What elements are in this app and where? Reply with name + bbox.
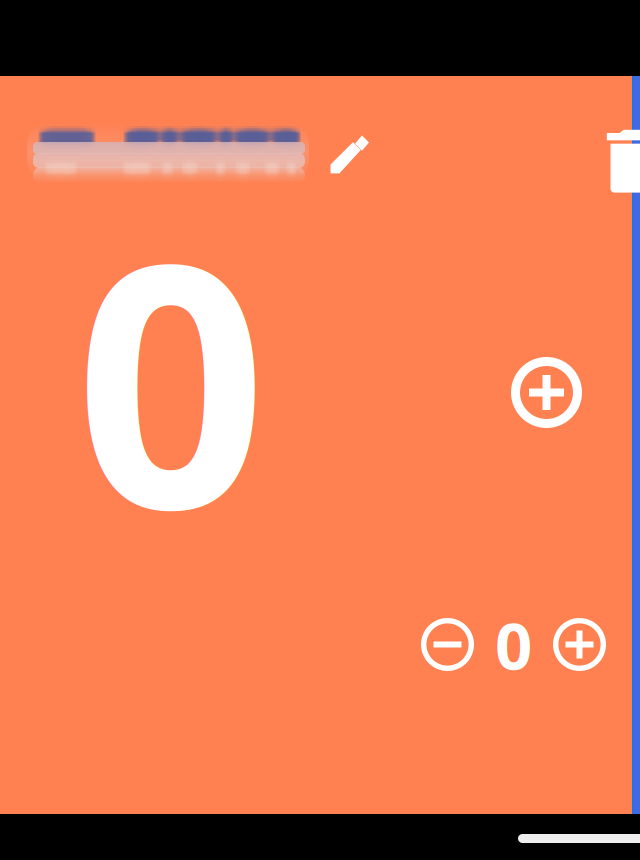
staticText: 0 <box>495 601 532 688</box>
staticText: 0 <box>75 155 267 601</box>
button[interactable]: Rename <box>330 135 369 174</box>
button[interactable]: Counter name <box>39 127 297 185</box>
button[interactable]: Increase step <box>553 618 606 671</box>
button[interactable]: Decrease step <box>421 618 474 671</box>
button[interactable]: Increment <box>511 357 582 428</box>
button[interactable]: Delete <box>607 133 640 193</box>
